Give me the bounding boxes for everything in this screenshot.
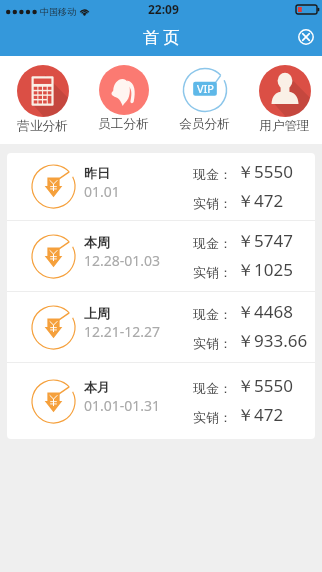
staticText: 01.01	[84, 182, 120, 201]
staticText: 实销：	[193, 264, 232, 280]
staticText: 现金：	[193, 306, 232, 322]
staticText: ￥4468	[237, 300, 293, 323]
staticText: 12.21-12.27	[84, 322, 161, 341]
staticText: 实销：	[193, 195, 232, 211]
staticText: 现金：	[193, 166, 232, 182]
button[interactable]: Close	[294, 25, 318, 49]
button[interactable]: 营业分析	[2, 56, 83, 144]
staticText: 员工分析	[98, 116, 149, 132]
staticText: ￥1025	[237, 258, 293, 281]
staticText: 会员分析	[179, 116, 230, 132]
staticText: 实销：	[193, 409, 232, 425]
staticText: 本周	[84, 234, 110, 250]
staticText: 现金：	[193, 380, 232, 396]
staticText: 中国移动	[40, 6, 76, 17]
staticText: 12.28-01.03	[84, 251, 161, 270]
button[interactable]: VIP	[164, 56, 245, 144]
button[interactable]: 本月	[7, 363, 315, 439]
button[interactable]: 本周	[7, 221, 315, 291]
staticText: 01.01-01.31	[84, 396, 161, 415]
staticText: 实销：	[193, 335, 232, 351]
staticText: 首 页	[143, 26, 180, 48]
staticText: VIP	[197, 81, 214, 96]
button[interactable]: 用户管理	[245, 56, 322, 144]
button[interactable]: 昨日	[7, 153, 315, 220]
staticText: ￥5550	[237, 374, 293, 397]
staticText: ￥472	[237, 189, 284, 212]
staticText: ￥5747	[237, 229, 293, 252]
staticText: ￥5550	[237, 160, 293, 183]
staticText: 营业分析	[17, 118, 68, 134]
staticText: 现金：	[193, 235, 232, 251]
staticText: 本月	[84, 379, 110, 395]
button[interactable]: 上周	[7, 292, 315, 362]
staticText: ￥472	[237, 403, 284, 426]
button[interactable]: 员工分析	[83, 56, 164, 144]
staticText: 用户管理	[259, 118, 310, 134]
staticText: 上周	[84, 305, 110, 321]
staticText: 22:09	[148, 1, 179, 17]
staticText: ￥933.66	[237, 329, 308, 352]
staticText: 昨日	[84, 165, 110, 181]
